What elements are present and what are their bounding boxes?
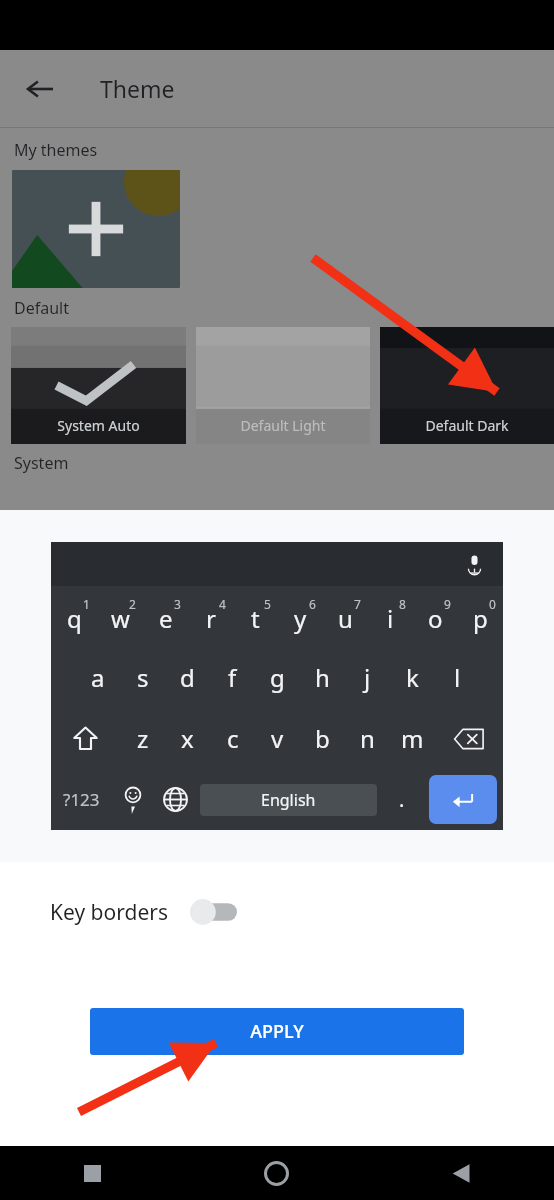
staticText: 1	[83, 596, 90, 612]
staticText: i	[387, 602, 394, 635]
staticText: d	[180, 661, 195, 694]
button[interactable]: y	[278, 586, 323, 647]
button[interactable]: s	[120, 647, 165, 708]
button[interactable]: English	[200, 784, 377, 816]
staticText: .	[399, 786, 405, 813]
staticText: System Auto	[57, 416, 140, 435]
button[interactable]: Recents	[0, 1146, 184, 1200]
button[interactable]: Backspace	[435, 708, 503, 769]
staticText: APPLY	[250, 1019, 304, 1044]
button[interactable]: m	[390, 708, 435, 769]
button[interactable]: Shift	[51, 708, 120, 769]
button[interactable]: h	[300, 647, 345, 708]
button[interactable]: n	[345, 708, 390, 769]
staticText: e	[159, 602, 173, 635]
button[interactable]: Back	[14, 63, 66, 115]
staticText: n	[360, 722, 375, 755]
button[interactable]: Back	[369, 1146, 554, 1200]
button[interactable]: q	[51, 586, 97, 647]
button[interactable]: c	[210, 708, 255, 769]
staticText: a	[91, 661, 105, 694]
staticText: m	[401, 722, 424, 755]
button[interactable]: p	[458, 586, 503, 647]
button[interactable]: v	[255, 708, 300, 769]
button[interactable]: o	[413, 586, 458, 647]
staticText: Default Dark	[425, 416, 509, 435]
staticText: 2	[129, 596, 136, 612]
staticText: g	[270, 661, 285, 694]
staticText: My themes	[14, 139, 98, 161]
button[interactable]: Enter	[429, 775, 497, 824]
staticText: Key borders	[50, 898, 168, 927]
staticText: Default	[14, 297, 69, 319]
button[interactable]: b	[300, 708, 345, 769]
button[interactable]: f	[210, 647, 255, 708]
staticText: u	[338, 602, 353, 635]
staticText: Default Light	[240, 416, 326, 435]
staticText: 7	[354, 596, 361, 612]
staticText: z	[137, 722, 149, 755]
staticText: q	[67, 602, 82, 635]
staticText: x	[181, 722, 194, 755]
staticText: Theme	[100, 73, 175, 104]
staticText: v	[271, 722, 284, 755]
staticText: 6	[309, 596, 316, 612]
staticText: l	[454, 661, 461, 694]
staticText: o	[428, 602, 443, 635]
button[interactable]: j	[345, 647, 390, 708]
button[interactable]: w	[97, 586, 143, 647]
staticText: ?123	[63, 788, 100, 811]
staticText: 4	[219, 596, 226, 612]
staticText: t	[251, 602, 260, 635]
staticText: System	[14, 452, 69, 474]
button[interactable]: x	[165, 708, 210, 769]
button[interactable]: Default Light	[196, 327, 370, 444]
staticText: b	[315, 722, 330, 755]
button[interactable]: Change language	[154, 769, 196, 830]
button[interactable]: d	[165, 647, 210, 708]
button[interactable]: k	[390, 647, 435, 708]
button[interactable]: Default Dark	[380, 327, 554, 444]
button[interactable]: Emoji	[112, 769, 154, 830]
button[interactable]: APPLY	[90, 1008, 464, 1055]
button[interactable]: e	[143, 586, 188, 647]
staticText: 8	[399, 596, 406, 612]
staticText: 5	[264, 596, 271, 612]
button[interactable]: Add theme	[12, 170, 180, 288]
button[interactable]: r	[188, 586, 233, 647]
button[interactable]: ?123	[51, 769, 112, 830]
staticText: English	[261, 789, 316, 811]
button[interactable]: System Auto	[11, 327, 186, 444]
staticText: h	[315, 661, 330, 694]
staticText: p	[473, 602, 488, 635]
staticText: s	[137, 661, 149, 694]
staticText: k	[406, 661, 419, 694]
button[interactable]: a	[75, 647, 120, 708]
button[interactable]: Key borders	[0, 880, 554, 944]
staticText: w	[111, 602, 130, 635]
staticText: 0	[489, 596, 496, 612]
staticText: 3	[174, 596, 181, 612]
staticText: f	[228, 661, 237, 694]
button[interactable]: Voice input	[459, 549, 489, 579]
button[interactable]: Home	[184, 1146, 369, 1200]
button[interactable]: t	[233, 586, 278, 647]
button[interactable]: l	[435, 647, 480, 708]
button[interactable]: i	[368, 586, 413, 647]
staticText: y	[294, 602, 307, 635]
button[interactable]: g	[255, 647, 300, 708]
staticText: r	[206, 602, 216, 635]
staticText: 9	[444, 596, 451, 612]
button[interactable]: u	[323, 586, 368, 647]
button[interactable]: .	[381, 769, 423, 830]
staticText: c	[227, 722, 239, 755]
staticText: j	[364, 661, 371, 694]
button[interactable]: z	[120, 708, 165, 769]
